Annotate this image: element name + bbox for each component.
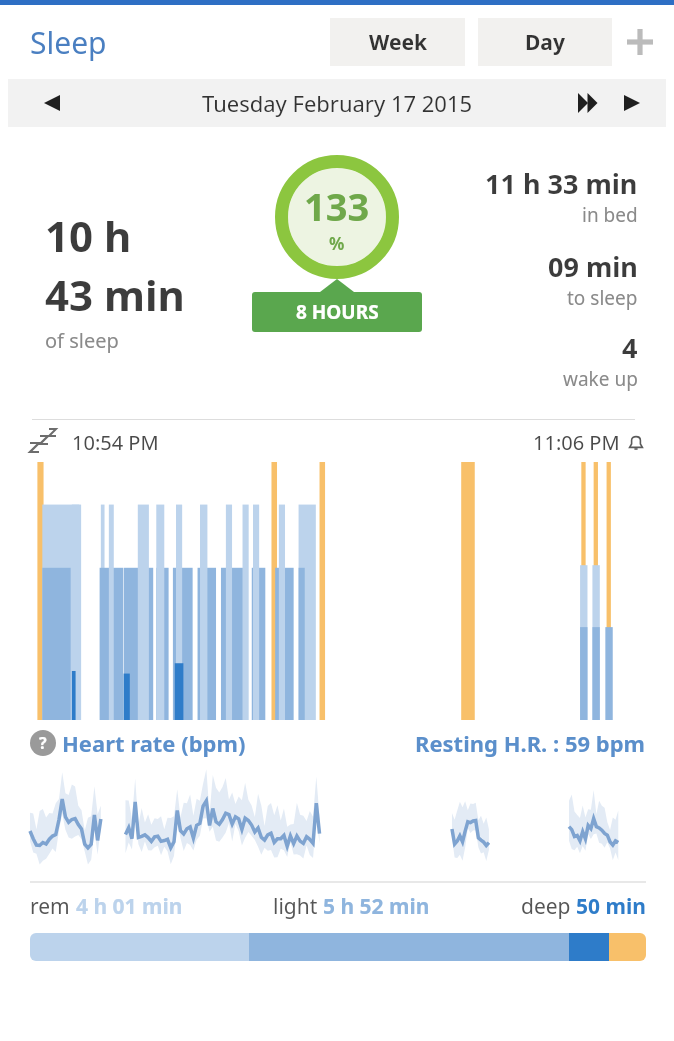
staticText: 11:06 PM (533, 429, 620, 456)
staticText: % (329, 232, 345, 255)
button[interactable]: rem (30, 892, 183, 921)
staticText: Week (369, 28, 427, 57)
button[interactable]: Sleep (30, 22, 107, 63)
button[interactable]: Fast forward (566, 81, 610, 125)
staticText: 133 (304, 180, 370, 232)
staticText: ? (39, 732, 47, 754)
staticText: 4 h 01 min (76, 892, 183, 921)
staticText: 11 h 33 min (485, 165, 638, 202)
button[interactable]: 8 HOURS (252, 292, 422, 332)
button[interactable]: 133 (275, 155, 399, 279)
staticText: 4 (622, 329, 638, 366)
button[interactable]: Resting H.R. : 59 bpm (415, 728, 646, 758)
button[interactable]: Add (620, 22, 660, 62)
staticText: 50 min (576, 892, 646, 921)
staticText: 43 min (45, 266, 185, 323)
button[interactable]: Week (330, 18, 465, 66)
staticText: 5 h 52 min (323, 892, 430, 921)
staticText: 10 h (45, 207, 132, 264)
staticText: to sleep (567, 285, 638, 311)
button[interactable]: deep (521, 892, 646, 921)
staticText: Heart rate (bpm) (62, 728, 246, 758)
staticText: 8 HOURS (296, 299, 379, 325)
staticText: 09 min (548, 248, 638, 285)
button[interactable]: Day (478, 18, 612, 66)
staticText: of sleep (45, 327, 119, 354)
button[interactable]: Next (610, 81, 654, 125)
button[interactable] (30, 933, 646, 961)
staticText: in bed (582, 202, 638, 228)
staticText: Day (525, 28, 565, 57)
staticText: deep (521, 892, 576, 921)
button[interactable]: light (273, 892, 430, 921)
staticText: 10:54 PM (72, 429, 159, 456)
button[interactable]: Previous (30, 81, 74, 125)
staticText: Tuesday February 17 2015 (202, 88, 473, 118)
staticText: wake up (563, 366, 638, 392)
button[interactable]: ? (30, 728, 246, 758)
staticText: rem (30, 892, 76, 921)
staticText: light (273, 892, 323, 921)
